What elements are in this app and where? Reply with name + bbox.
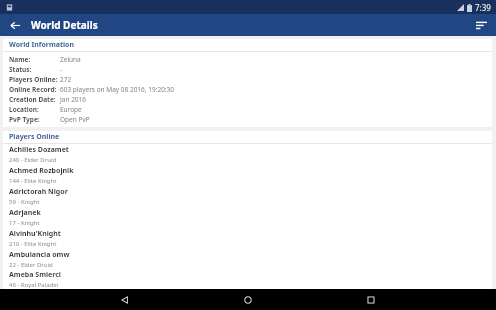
button[interactable]: Ameba Smierci (3, 270, 492, 289)
staticText: PvP Type: (9, 115, 40, 124)
staticText: 210 - Elite Knight (9, 240, 57, 248)
staticText: Adrictorah Nigor (9, 187, 68, 197)
staticText: Europe (60, 105, 82, 114)
staticText: Name: (9, 55, 31, 64)
staticText: 46 - Royal Paladin (9, 281, 59, 289)
button[interactable]: Back (115, 290, 135, 310)
staticText: World Information (9, 40, 75, 50)
staticText: Players Online: (9, 75, 58, 84)
staticText: Zeluna (60, 55, 81, 64)
staticText: 603 players on May 08 2016, 19:20:30 (60, 85, 175, 94)
staticText: Online Record: (9, 85, 57, 94)
staticText: 7:39 (475, 2, 491, 13)
staticText: Creation Date: (9, 95, 56, 104)
button[interactable]: Recents (361, 290, 381, 310)
staticText: Status: (9, 65, 32, 74)
staticText: World Details (31, 18, 98, 32)
staticText: Open PvP (60, 115, 90, 124)
staticText: - (60, 65, 63, 74)
staticText: Players Online (9, 132, 60, 142)
staticText: Achilles Dozamet (9, 145, 69, 155)
staticText: 22 - Elder Druid (9, 261, 53, 269)
staticText: 59 - Knight (9, 198, 40, 206)
staticText: 17 - Knight (9, 219, 40, 227)
button[interactable]: Adrjanek (3, 207, 492, 228)
staticText: Ambulancia omw (9, 250, 70, 260)
staticText: Achmed Rozbojnik (9, 166, 74, 176)
staticText: Ameba Smierci (9, 270, 61, 280)
staticText: 144 - Elite Knight (9, 177, 57, 185)
staticText: Location: (9, 105, 39, 114)
button[interactable]: Navigate up (4, 14, 26, 36)
button[interactable]: Home (238, 290, 258, 310)
button[interactable]: Alvinhu'Knight (3, 228, 492, 249)
button[interactable]: Achmed Rozbojnik (3, 165, 492, 186)
button[interactable]: Adrictorah Nigor (3, 186, 492, 207)
button[interactable]: Achilles Dozamet (3, 144, 492, 165)
staticText: 272 (60, 75, 72, 84)
staticText: Adrjanek (9, 208, 41, 218)
staticText: Jan 2016 (60, 95, 87, 104)
staticText: 240 - Elder Druid (9, 156, 57, 164)
button[interactable]: Ambulancia omw (3, 249, 492, 270)
staticText: Alvinhu'Knight (9, 229, 61, 239)
button[interactable]: Sort (470, 14, 492, 36)
